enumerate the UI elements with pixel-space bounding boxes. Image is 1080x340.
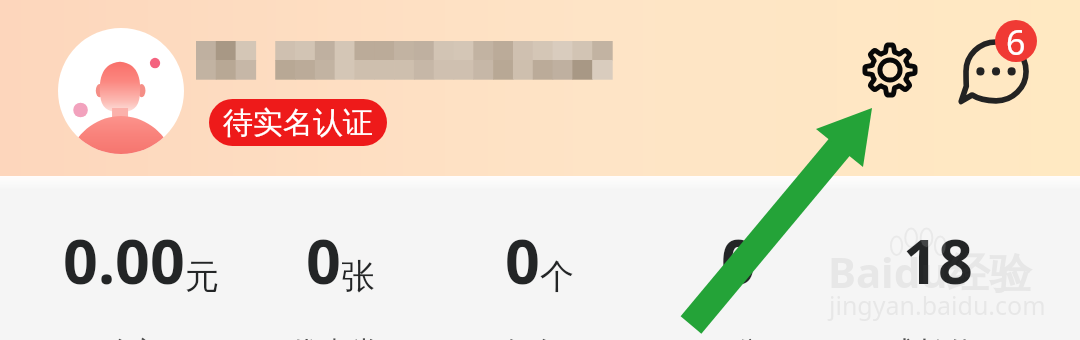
staticText: 待实名认证	[223, 104, 373, 142]
staticText: 张	[341, 255, 375, 298]
button[interactable]: Settings	[854, 34, 926, 106]
button[interactable]: 0	[241, 176, 440, 340]
staticText: 个	[540, 255, 574, 298]
button[interactable]: 18	[838, 176, 1037, 340]
staticText: 0	[505, 219, 540, 302]
button[interactable]: Profile photo	[58, 28, 184, 154]
staticText: 18	[903, 219, 973, 302]
staticText: 0.00	[63, 219, 185, 302]
staticText: 余额	[35, 334, 235, 340]
button[interactable]: 0	[440, 176, 639, 340]
staticText: Baidu经验	[828, 243, 1032, 300]
staticText: 元	[185, 255, 219, 298]
staticText: 优惠券	[235, 334, 434, 340]
staticText: jingyan.baidu.com	[829, 288, 1046, 322]
button[interactable]: 0.00	[41, 176, 241, 340]
button[interactable]: 待实名认证	[209, 99, 387, 146]
staticText: 红包	[434, 334, 633, 340]
staticText: 0	[721, 219, 756, 302]
staticText: 成长值	[832, 334, 1031, 340]
button[interactable]: Messages, 6 unread	[960, 16, 1038, 94]
staticText: 0	[306, 219, 341, 302]
staticText: 6	[1006, 20, 1026, 61]
staticText: 积分	[633, 334, 832, 340]
button[interactable]: 0	[639, 176, 838, 340]
